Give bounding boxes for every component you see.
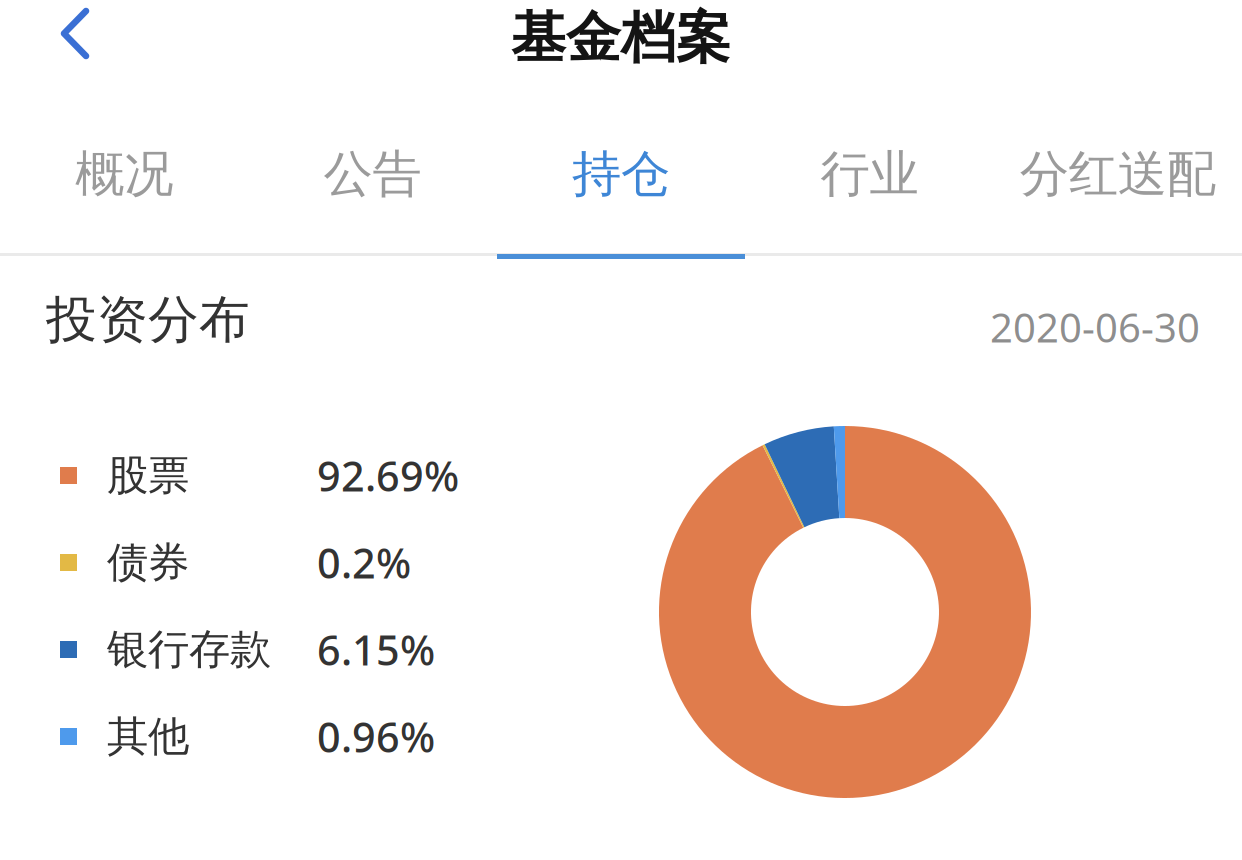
staticText: 股票 bbox=[107, 450, 189, 501]
button[interactable]: 行业 bbox=[745, 86, 994, 259]
staticText: 持仓 bbox=[572, 144, 670, 204]
button[interactable]: 公告 bbox=[248, 86, 497, 259]
button[interactable]: 概况 bbox=[0, 86, 248, 259]
staticText: 概况 bbox=[75, 144, 173, 204]
staticText: 基金档案 bbox=[511, 4, 731, 71]
staticText: 6.15% bbox=[317, 622, 435, 677]
staticText: 债券 bbox=[107, 537, 189, 588]
staticText: 投资分布 bbox=[46, 289, 250, 351]
staticText: 银行存款 bbox=[107, 624, 271, 675]
button[interactable]: Back bbox=[0, 0, 126, 67]
staticText: 公告 bbox=[324, 144, 422, 204]
staticText: 分红送配 bbox=[1020, 144, 1216, 204]
staticText: 92.69% bbox=[317, 448, 459, 503]
staticText: 0.96% bbox=[317, 709, 435, 764]
staticText: 其他 bbox=[107, 711, 189, 762]
button[interactable]: 持仓 bbox=[497, 86, 745, 259]
button[interactable]: 分红送配 bbox=[994, 86, 1242, 259]
staticText: 2020-06-30 bbox=[990, 300, 1200, 353]
staticText: 0.2% bbox=[317, 535, 411, 590]
staticText: 行业 bbox=[820, 144, 918, 204]
